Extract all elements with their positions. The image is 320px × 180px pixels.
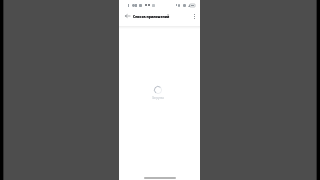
button[interactable]: More options bbox=[189, 11, 199, 21]
button[interactable]: Back bbox=[122, 11, 132, 21]
staticText: Загрузка bbox=[152, 96, 164, 100]
staticText: Список приложений bbox=[133, 14, 170, 19]
staticText: Список приложений bbox=[133, 14, 170, 19]
